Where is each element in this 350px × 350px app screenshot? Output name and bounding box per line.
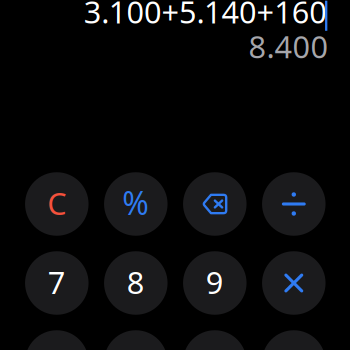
- button[interactable]: 6: [183, 330, 247, 350]
- button[interactable]: Delete: [183, 172, 247, 236]
- staticText: 8: [127, 262, 145, 302]
- staticText: 8.400: [248, 26, 328, 67]
- button[interactable]: 7: [25, 251, 88, 315]
- button[interactable]: 9: [183, 251, 247, 315]
- button[interactable]: 4: [25, 330, 88, 350]
- button[interactable]: 5: [104, 330, 168, 350]
- button[interactable]: Minus: [262, 330, 326, 350]
- button[interactable]: C: [25, 172, 88, 236]
- button[interactable]: Multiply: [262, 251, 326, 315]
- button[interactable]: 8: [104, 251, 168, 315]
- button[interactable]: %: [104, 172, 168, 236]
- staticText: 9: [206, 262, 224, 302]
- staticText: C: [47, 183, 66, 223]
- staticText: %: [122, 181, 149, 224]
- staticText: 7: [48, 262, 66, 302]
- button[interactable]: Divide: [262, 172, 326, 236]
- staticText: 3.100+5.140+160: [84, 0, 327, 32]
